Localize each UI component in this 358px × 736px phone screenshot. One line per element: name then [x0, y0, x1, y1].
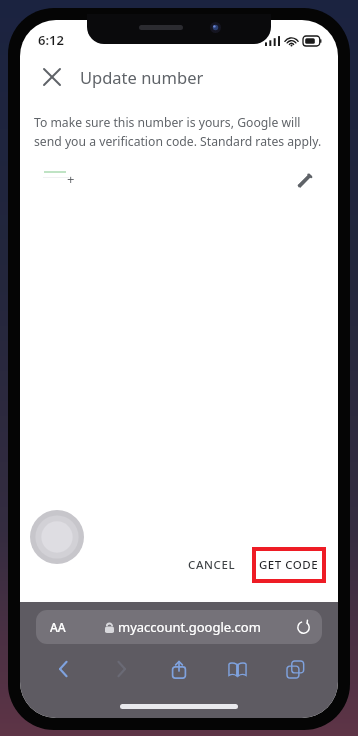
staticText: 6:12: [38, 31, 64, 49]
staticText: AA: [50, 619, 66, 635]
staticText: GET CODE: [259, 557, 319, 573]
staticText: +: [67, 170, 75, 188]
button[interactable]: CANCEL: [178, 549, 246, 581]
button[interactable]: Share: [150, 652, 208, 686]
staticText: Update number: [80, 66, 204, 88]
button[interactable]: Reload: [290, 614, 316, 640]
button[interactable]: GET CODE: [256, 551, 322, 579]
staticText: To make sure this number is yours, Googl…: [34, 114, 324, 149]
button[interactable]: AA: [36, 610, 322, 644]
button[interactable]: Bookmarks: [208, 652, 266, 686]
button[interactable]: Edit number: [284, 163, 324, 197]
button[interactable]: Back: [34, 652, 92, 686]
staticText: myaccount.google.com: [118, 618, 261, 636]
button[interactable]: Close: [30, 55, 74, 99]
button[interactable]: Tabs: [266, 652, 324, 686]
staticText: CANCEL: [188, 557, 236, 573]
